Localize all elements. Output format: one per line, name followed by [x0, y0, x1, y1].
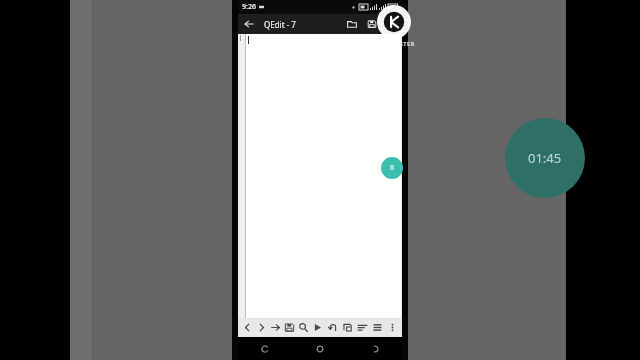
- staticText: QEdit - 7: [264, 19, 296, 30]
- staticText: 8: [390, 163, 395, 173]
- staticText: 9:26: [242, 2, 256, 12]
- button[interactable]: Open file: [343, 15, 361, 33]
- button[interactable]: Previous: [240, 318, 254, 337]
- button[interactable]: Recent apps: [347, 337, 402, 360]
- button[interactable]: Save: [363, 15, 381, 33]
- button[interactable]: More options: [385, 318, 400, 337]
- button[interactable]: More options: [383, 16, 399, 32]
- button[interactable]: Run: [310, 318, 325, 337]
- button[interactable]: Insert tab: [268, 318, 282, 337]
- button[interactable]: Redo: [340, 318, 355, 337]
- button[interactable]: Home: [292, 337, 347, 360]
- button[interactable]: Search: [296, 318, 310, 337]
- staticText: 01:45: [528, 149, 562, 167]
- button[interactable]: Save: [282, 318, 296, 337]
- button[interactable]: Back: [240, 15, 258, 33]
- staticText: KINEMASTER: [373, 40, 415, 48]
- button[interactable]: Format: [355, 318, 370, 337]
- button[interactable]: Undo: [325, 318, 340, 337]
- button[interactable]: Back: [238, 337, 292, 360]
- button[interactable]: Next: [254, 318, 268, 337]
- button[interactable]: List: [370, 318, 385, 337]
